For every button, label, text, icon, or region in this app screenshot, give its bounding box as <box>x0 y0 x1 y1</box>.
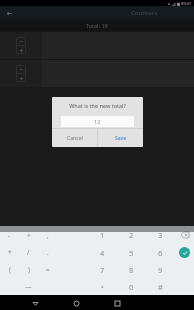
button[interactable]: 5 <box>117 244 146 261</box>
staticText: Counters <box>131 9 158 17</box>
staticText: , <box>47 231 49 240</box>
button[interactable]: + <box>19 226 38 244</box>
button[interactable]: Increase <box>16 74 26 82</box>
staticText: 0 <box>129 282 134 292</box>
button[interactable]: 0 <box>117 278 146 295</box>
staticText: 7 <box>100 265 105 275</box>
button[interactable]: — <box>19 278 38 295</box>
staticText: What is the new total? <box>69 102 126 109</box>
button[interactable]: = <box>38 261 57 278</box>
button[interactable]: Decrease <box>16 37 26 45</box>
staticText: Save <box>115 135 127 142</box>
staticText: Total: 19 <box>86 22 108 29</box>
button[interactable]: / <box>19 244 38 261</box>
staticText: — <box>25 282 32 291</box>
staticText: ) <box>28 265 30 274</box>
staticText: / <box>27 248 30 257</box>
button[interactable]: ) <box>19 261 38 278</box>
staticText: 5 <box>129 248 134 258</box>
staticText: . <box>47 248 49 257</box>
button[interactable]: Recents <box>110 296 124 310</box>
button[interactable]: * <box>0 244 19 261</box>
button[interactable]: Done <box>179 247 190 258</box>
staticText: 8 <box>129 265 134 275</box>
button[interactable]: 12 <box>61 116 134 127</box>
button[interactable]: 3 <box>146 226 175 244</box>
staticText: 6 <box>158 248 163 258</box>
staticText: * <box>8 248 12 257</box>
button[interactable]: • <box>88 278 117 295</box>
button[interactable]: Back <box>4 8 14 18</box>
button[interactable]: Home <box>69 296 83 310</box>
button[interactable]: Increase <box>16 46 26 54</box>
button[interactable]: 1 <box>88 226 117 244</box>
button[interactable]: 2 <box>117 226 146 244</box>
staticText: 3 <box>158 230 163 240</box>
staticText: 9 <box>158 265 163 275</box>
staticText: # <box>158 282 163 292</box>
button[interactable]: - <box>0 226 19 244</box>
staticText: 4 <box>100 248 105 258</box>
staticText: 12 <box>94 118 101 125</box>
staticText: • <box>101 282 104 292</box>
button[interactable]: Back <box>28 296 42 310</box>
button[interactable]: ( <box>0 261 19 278</box>
staticText: 2 <box>129 230 134 240</box>
button[interactable]: 8 <box>117 261 146 278</box>
staticText: - <box>8 231 11 240</box>
button[interactable]: , <box>38 226 57 244</box>
button[interactable]: # <box>146 278 175 295</box>
button[interactable]: Save <box>98 129 143 147</box>
staticText: Cancel <box>67 135 83 142</box>
button[interactable]: Delete <box>179 229 191 241</box>
staticText: 1 <box>100 230 105 240</box>
button[interactable]: Cancel <box>52 129 97 147</box>
button[interactable]: Decrease <box>16 65 26 73</box>
staticText: 09:41 <box>181 1 192 6</box>
button[interactable]: 9 <box>146 261 175 278</box>
staticText: + <box>27 231 31 240</box>
staticText: = <box>46 265 50 274</box>
button[interactable]: 7 <box>88 261 117 278</box>
button[interactable]: 4 <box>88 244 117 261</box>
staticText: ( <box>9 265 11 274</box>
button[interactable]: 6 <box>146 244 175 261</box>
